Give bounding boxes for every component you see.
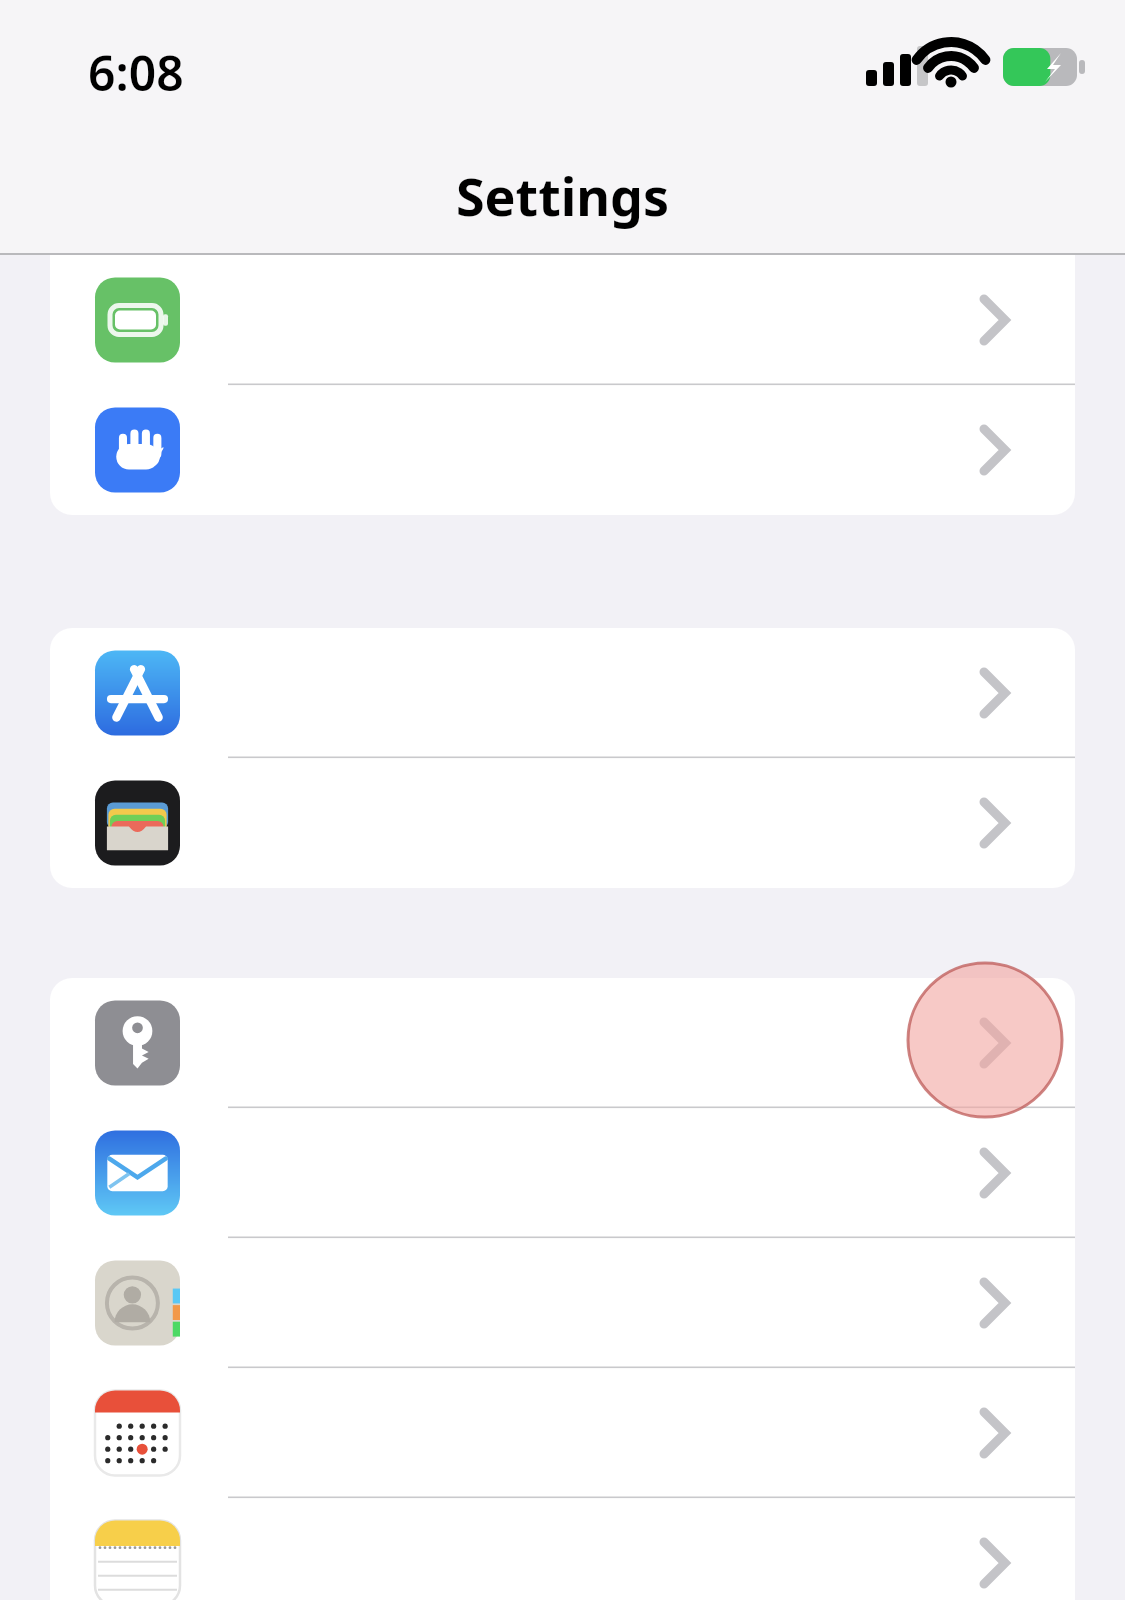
- button[interactable]: App Store: [50, 628, 1075, 758]
- button[interactable]: Contacts: [50, 1238, 1075, 1368]
- staticText: Settings: [0, 160, 1125, 231]
- button[interactable]: Privacy & Security: [50, 385, 1075, 515]
- staticText: 6:08: [88, 40, 184, 105]
- button[interactable]: Battery: [50, 255, 1075, 385]
- button[interactable]: Notes: [50, 1498, 1075, 1600]
- button[interactable]: Calendar: [50, 1368, 1075, 1498]
- button[interactable]: Passwords: [50, 978, 1075, 1108]
- button[interactable]: Mail: [50, 1108, 1075, 1238]
- button[interactable]: Wallet & Apple Pay: [50, 758, 1075, 888]
